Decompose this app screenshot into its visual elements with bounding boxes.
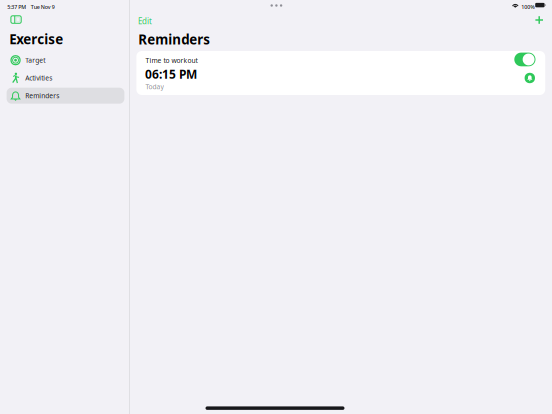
button[interactable]: Target xyxy=(7,52,124,68)
button[interactable]: Activities xyxy=(7,70,124,86)
staticText: Time to workout xyxy=(145,56,197,65)
staticText: Reminders xyxy=(25,91,59,100)
button[interactable]: Add Reminder xyxy=(535,16,543,24)
staticText: Edit xyxy=(138,16,152,26)
button[interactable]: Reminder enabled xyxy=(514,53,535,66)
staticText: 5:37 PM xyxy=(7,3,26,10)
staticText: 100% xyxy=(521,3,535,10)
button[interactable]: Edit xyxy=(135,13,155,29)
staticText: Tue Nov 9 xyxy=(31,3,55,10)
button[interactable]: Reminders xyxy=(7,88,124,104)
staticText: Exercise xyxy=(9,30,63,48)
staticText: 06:15 PM xyxy=(145,66,197,82)
staticText: Activities xyxy=(25,74,52,82)
staticText: Today xyxy=(145,82,163,91)
staticText: Reminders xyxy=(138,30,210,48)
staticText: Target xyxy=(25,56,45,65)
button[interactable]: Notification style xyxy=(525,73,535,83)
button[interactable]: Hide Sidebar xyxy=(11,16,21,23)
